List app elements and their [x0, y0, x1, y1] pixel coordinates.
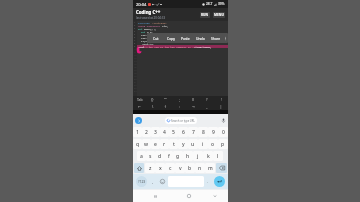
staticText: | [220, 104, 222, 109]
staticText: 4 [163, 129, 166, 136]
staticText: s [149, 153, 152, 160]
button[interactable]: u [188, 139, 198, 149]
button[interactable]: e [151, 139, 160, 149]
button[interactable]: Recents [133, 190, 177, 202]
button[interactable]: → [186, 103, 200, 110]
staticText: a [140, 153, 143, 160]
staticText: 2 [145, 129, 148, 136]
staticText: 23 [134, 87, 137, 90]
button[interactable]: j [193, 151, 203, 161]
button[interactable]: ! [214, 96, 228, 103]
button[interactable]: | [214, 103, 228, 110]
button[interactable]: 6 [178, 127, 188, 137]
staticText: 18 [134, 72, 137, 75]
button[interactable]: d [155, 151, 164, 161]
button[interactable]: q [133, 139, 142, 149]
button[interactable]: 3 [151, 127, 160, 137]
button[interactable]: Shift [134, 163, 144, 173]
button[interactable]: y [178, 139, 188, 149]
button[interactable]: _ [200, 103, 214, 110]
button[interactable]: 5 [169, 127, 178, 137]
button[interactable]: Backspace [216, 163, 227, 173]
button[interactable]: 8 [198, 127, 208, 137]
staticText: ← [138, 105, 141, 109]
button[interactable]: Undo [193, 33, 208, 43]
staticText: ?123 [138, 179, 146, 184]
button[interactable]: z [145, 163, 155, 173]
button[interactable]: , [150, 174, 156, 189]
button[interactable]: s [146, 151, 155, 161]
button[interactable]: MENU [213, 12, 225, 18]
button[interactable]: Emoji [156, 174, 168, 189]
staticText: d [158, 153, 162, 160]
staticText: Tab [137, 97, 143, 102]
staticText: p [221, 141, 225, 148]
button[interactable]: a [137, 151, 146, 161]
button[interactable]: 7 [188, 127, 198, 137]
button[interactable]: Copy [163, 33, 178, 43]
button[interactable]: Enter [214, 176, 225, 187]
button[interactable]: Tab [133, 96, 146, 103]
button[interactable]: RUN [200, 12, 210, 18]
button[interactable]: Share [208, 33, 223, 43]
button[interactable]: x [155, 163, 165, 173]
staticText: int [138, 27, 144, 30]
button[interactable]: f [164, 151, 173, 161]
button[interactable]: "" [159, 96, 172, 103]
button[interactable]: Cut [148, 33, 163, 43]
button[interactable]: Voice input [220, 117, 226, 123]
button[interactable]: More options [223, 33, 228, 43]
button[interactable]: 4 [160, 127, 169, 137]
button[interactable]: 1 [133, 127, 142, 137]
staticText: 4 [134, 30, 136, 33]
button[interactable]: h [183, 151, 193, 161]
staticText: Copy [167, 36, 175, 41]
button[interactable]: b [185, 163, 195, 173]
button[interactable]: n [195, 163, 205, 173]
button[interactable]: Paste [178, 33, 193, 43]
button[interactable]: p [218, 139, 228, 149]
button[interactable]: l [213, 151, 223, 161]
button[interactable]: Hide keyboard [201, 190, 228, 202]
staticText: 39% [218, 2, 225, 6]
button[interactable]: o [208, 139, 218, 149]
staticText: y [182, 141, 185, 148]
staticText: 0 [222, 129, 225, 136]
button[interactable]: Expand toolbar [135, 117, 142, 124]
staticText: 21 [134, 81, 137, 84]
staticText: 20:04 [136, 2, 147, 7]
staticText: ! [221, 97, 222, 102]
button[interactable]: ? [200, 96, 214, 103]
button[interactable]: i [198, 139, 208, 149]
button[interactable]: () [186, 96, 200, 103]
button[interactable]: : [172, 103, 186, 110]
button[interactable]: ?123 [136, 176, 147, 187]
staticText: c [169, 165, 172, 172]
button[interactable]: ← [133, 103, 146, 110]
button[interactable]: v [175, 163, 185, 173]
staticText: 20 [134, 78, 137, 81]
button[interactable]: w [142, 139, 151, 149]
staticText: <iostream> [152, 21, 167, 24]
button[interactable]: ; [172, 96, 186, 103]
button[interactable]: \ [146, 103, 159, 110]
button[interactable]: r [160, 139, 169, 149]
button[interactable]: k [203, 151, 213, 161]
button[interactable]: Home [177, 190, 201, 202]
button[interactable]: c [165, 163, 175, 173]
button[interactable]: 9 [208, 127, 218, 137]
button[interactable]: 2 [142, 127, 151, 137]
button[interactable]: Search or type URL [165, 117, 197, 124]
button[interactable]: 0 [218, 127, 228, 137]
button[interactable]: g [173, 151, 183, 161]
button[interactable]: {} [146, 96, 159, 103]
button[interactable]: ↑ [159, 103, 172, 110]
staticText: z [149, 165, 152, 172]
button[interactable]: t [169, 139, 178, 149]
button[interactable]: m [205, 163, 215, 173]
staticText: cout [138, 45, 144, 48]
